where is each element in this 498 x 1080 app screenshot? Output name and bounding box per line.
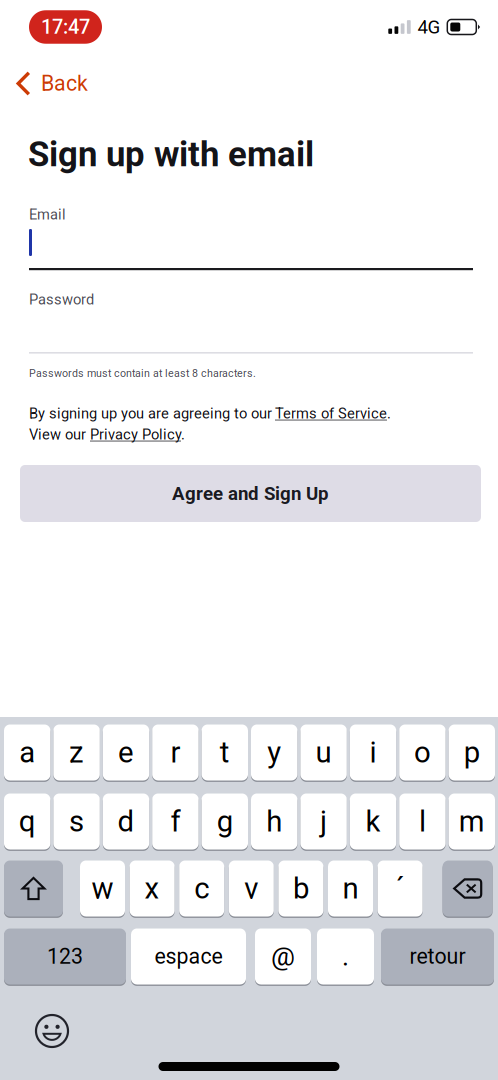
button[interactable]: Agree and Sign Up	[20, 465, 481, 522]
button[interactable]: Emoji	[33, 1012, 71, 1050]
button[interactable]: v	[229, 859, 274, 918]
staticText: 17:47	[41, 15, 90, 39]
button[interactable]: espace	[131, 927, 246, 986]
staticText: Sign up with email	[28, 134, 314, 175]
button[interactable]: n	[328, 859, 373, 918]
button[interactable]: h	[251, 792, 297, 851]
button[interactable]: retour	[381, 927, 494, 986]
staticText: q	[19, 804, 36, 839]
staticText: m	[459, 804, 485, 839]
button[interactable]: j	[300, 792, 347, 851]
button[interactable]: o	[399, 723, 446, 782]
staticText: z	[69, 735, 84, 770]
button[interactable]: z	[53, 723, 100, 782]
staticText: Passwords must contain at least 8 charac…	[29, 367, 256, 379]
button[interactable]: a	[4, 723, 50, 782]
staticText: s	[69, 804, 84, 839]
staticText: f	[170, 804, 180, 839]
staticText: k	[365, 804, 380, 839]
staticText: e	[118, 735, 134, 770]
staticText: i	[369, 735, 376, 770]
button[interactable]: i	[350, 723, 396, 782]
staticText: u	[316, 735, 332, 770]
staticText: Back	[41, 71, 88, 96]
button[interactable]: q	[4, 792, 50, 851]
button[interactable]: Shift	[4, 859, 63, 918]
button[interactable]: l	[399, 792, 446, 851]
staticText: y	[267, 735, 281, 770]
staticText: v	[244, 871, 258, 906]
staticText: x	[145, 871, 160, 906]
staticText: o	[414, 735, 431, 770]
button[interactable]: c	[179, 859, 224, 918]
staticText: View our Privacy Policy.	[29, 426, 185, 443]
button[interactable]: ´	[378, 859, 423, 918]
button[interactable]: k	[350, 792, 396, 851]
button[interactable]: t	[202, 723, 248, 782]
staticText: d	[117, 804, 134, 839]
button[interactable]: u	[300, 723, 347, 782]
staticText: 4G	[417, 16, 440, 38]
staticText: b	[293, 871, 309, 906]
button[interactable]: Back	[0, 63, 104, 104]
staticText: p	[464, 735, 480, 770]
staticText: 123	[47, 944, 83, 969]
button[interactable]: .	[317, 927, 374, 986]
button[interactable]: @	[255, 927, 311, 986]
staticText: By signing up you are agreeing to our Te…	[29, 405, 391, 422]
button[interactable]: b	[278, 859, 323, 918]
button[interactable]: w	[80, 859, 125, 918]
button[interactable]: 123	[4, 927, 126, 986]
staticText: espace	[154, 944, 222, 969]
staticText: retour	[409, 944, 465, 969]
staticText: t	[220, 735, 230, 770]
staticText: Password	[29, 291, 94, 308]
staticText: c	[194, 871, 209, 906]
button[interactable]: x	[130, 859, 175, 918]
button[interactable]: r	[152, 723, 199, 782]
button[interactable]: d	[103, 792, 149, 851]
staticText: a	[19, 735, 35, 770]
button[interactable]: y	[251, 723, 297, 782]
staticText: Email	[29, 206, 66, 223]
staticText: w	[91, 871, 113, 906]
button[interactable]: e	[103, 723, 149, 782]
staticText: ´	[396, 871, 405, 906]
staticText: n	[342, 871, 358, 906]
staticText: g	[217, 804, 233, 839]
staticText: r	[170, 735, 180, 770]
button[interactable]: p	[449, 723, 495, 782]
staticText: j	[320, 804, 327, 839]
staticText: .	[342, 941, 349, 972]
button[interactable]: g	[202, 792, 248, 851]
staticText: h	[266, 804, 282, 839]
staticText: Agree and Sign Up	[172, 483, 329, 504]
button[interactable]: f	[152, 792, 199, 851]
button[interactable]: m	[449, 792, 495, 851]
button[interactable]: s	[53, 792, 100, 851]
staticText: l	[419, 804, 426, 839]
staticText: @	[271, 941, 295, 972]
button[interactable]: Delete	[443, 859, 493, 918]
